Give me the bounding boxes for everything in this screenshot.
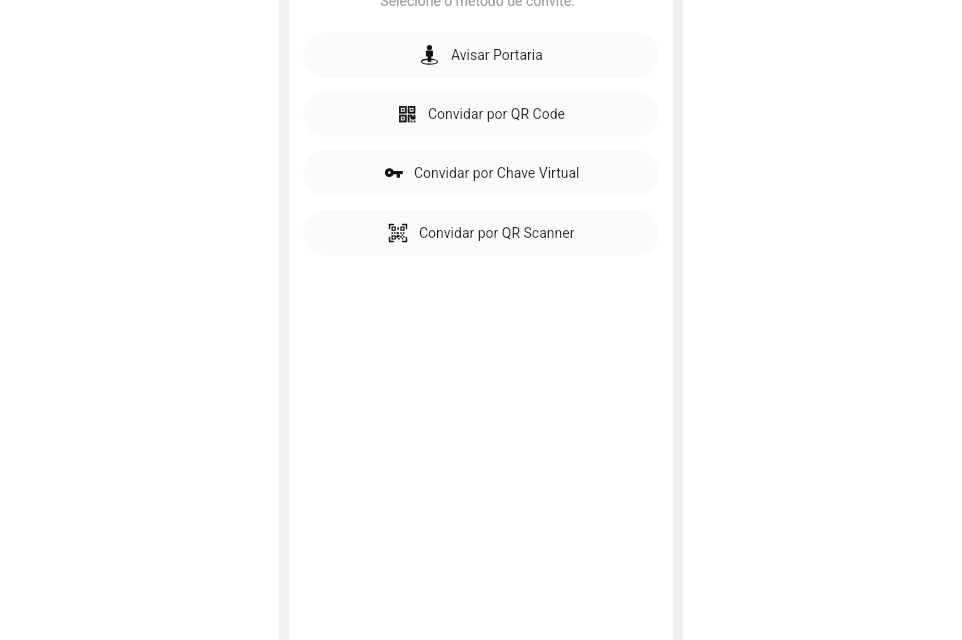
staticText: Convidar por QR Code [428, 106, 565, 122]
button[interactable]: Convidar por Chave Virtual [303, 150, 659, 196]
staticText: Convidar por Chave Virtual [414, 165, 580, 181]
other: Convidar por Chave Virtual [383, 163, 403, 183]
staticText: Convidar por QR Scanner [419, 225, 575, 241]
other: Avisar Portaria [420, 45, 440, 65]
other: Convidar por QR Scanner [388, 223, 408, 243]
other: Convidar por QR Code [397, 104, 417, 124]
button[interactable]: Convidar por QR Scanner [303, 210, 659, 256]
button[interactable]: Convidar por QR Code [303, 91, 659, 137]
staticText: Avisar Portaria [451, 47, 543, 63]
button[interactable]: Avisar Portaria [303, 32, 659, 78]
staticText: Selecione o método de convite: [380, 0, 575, 9]
